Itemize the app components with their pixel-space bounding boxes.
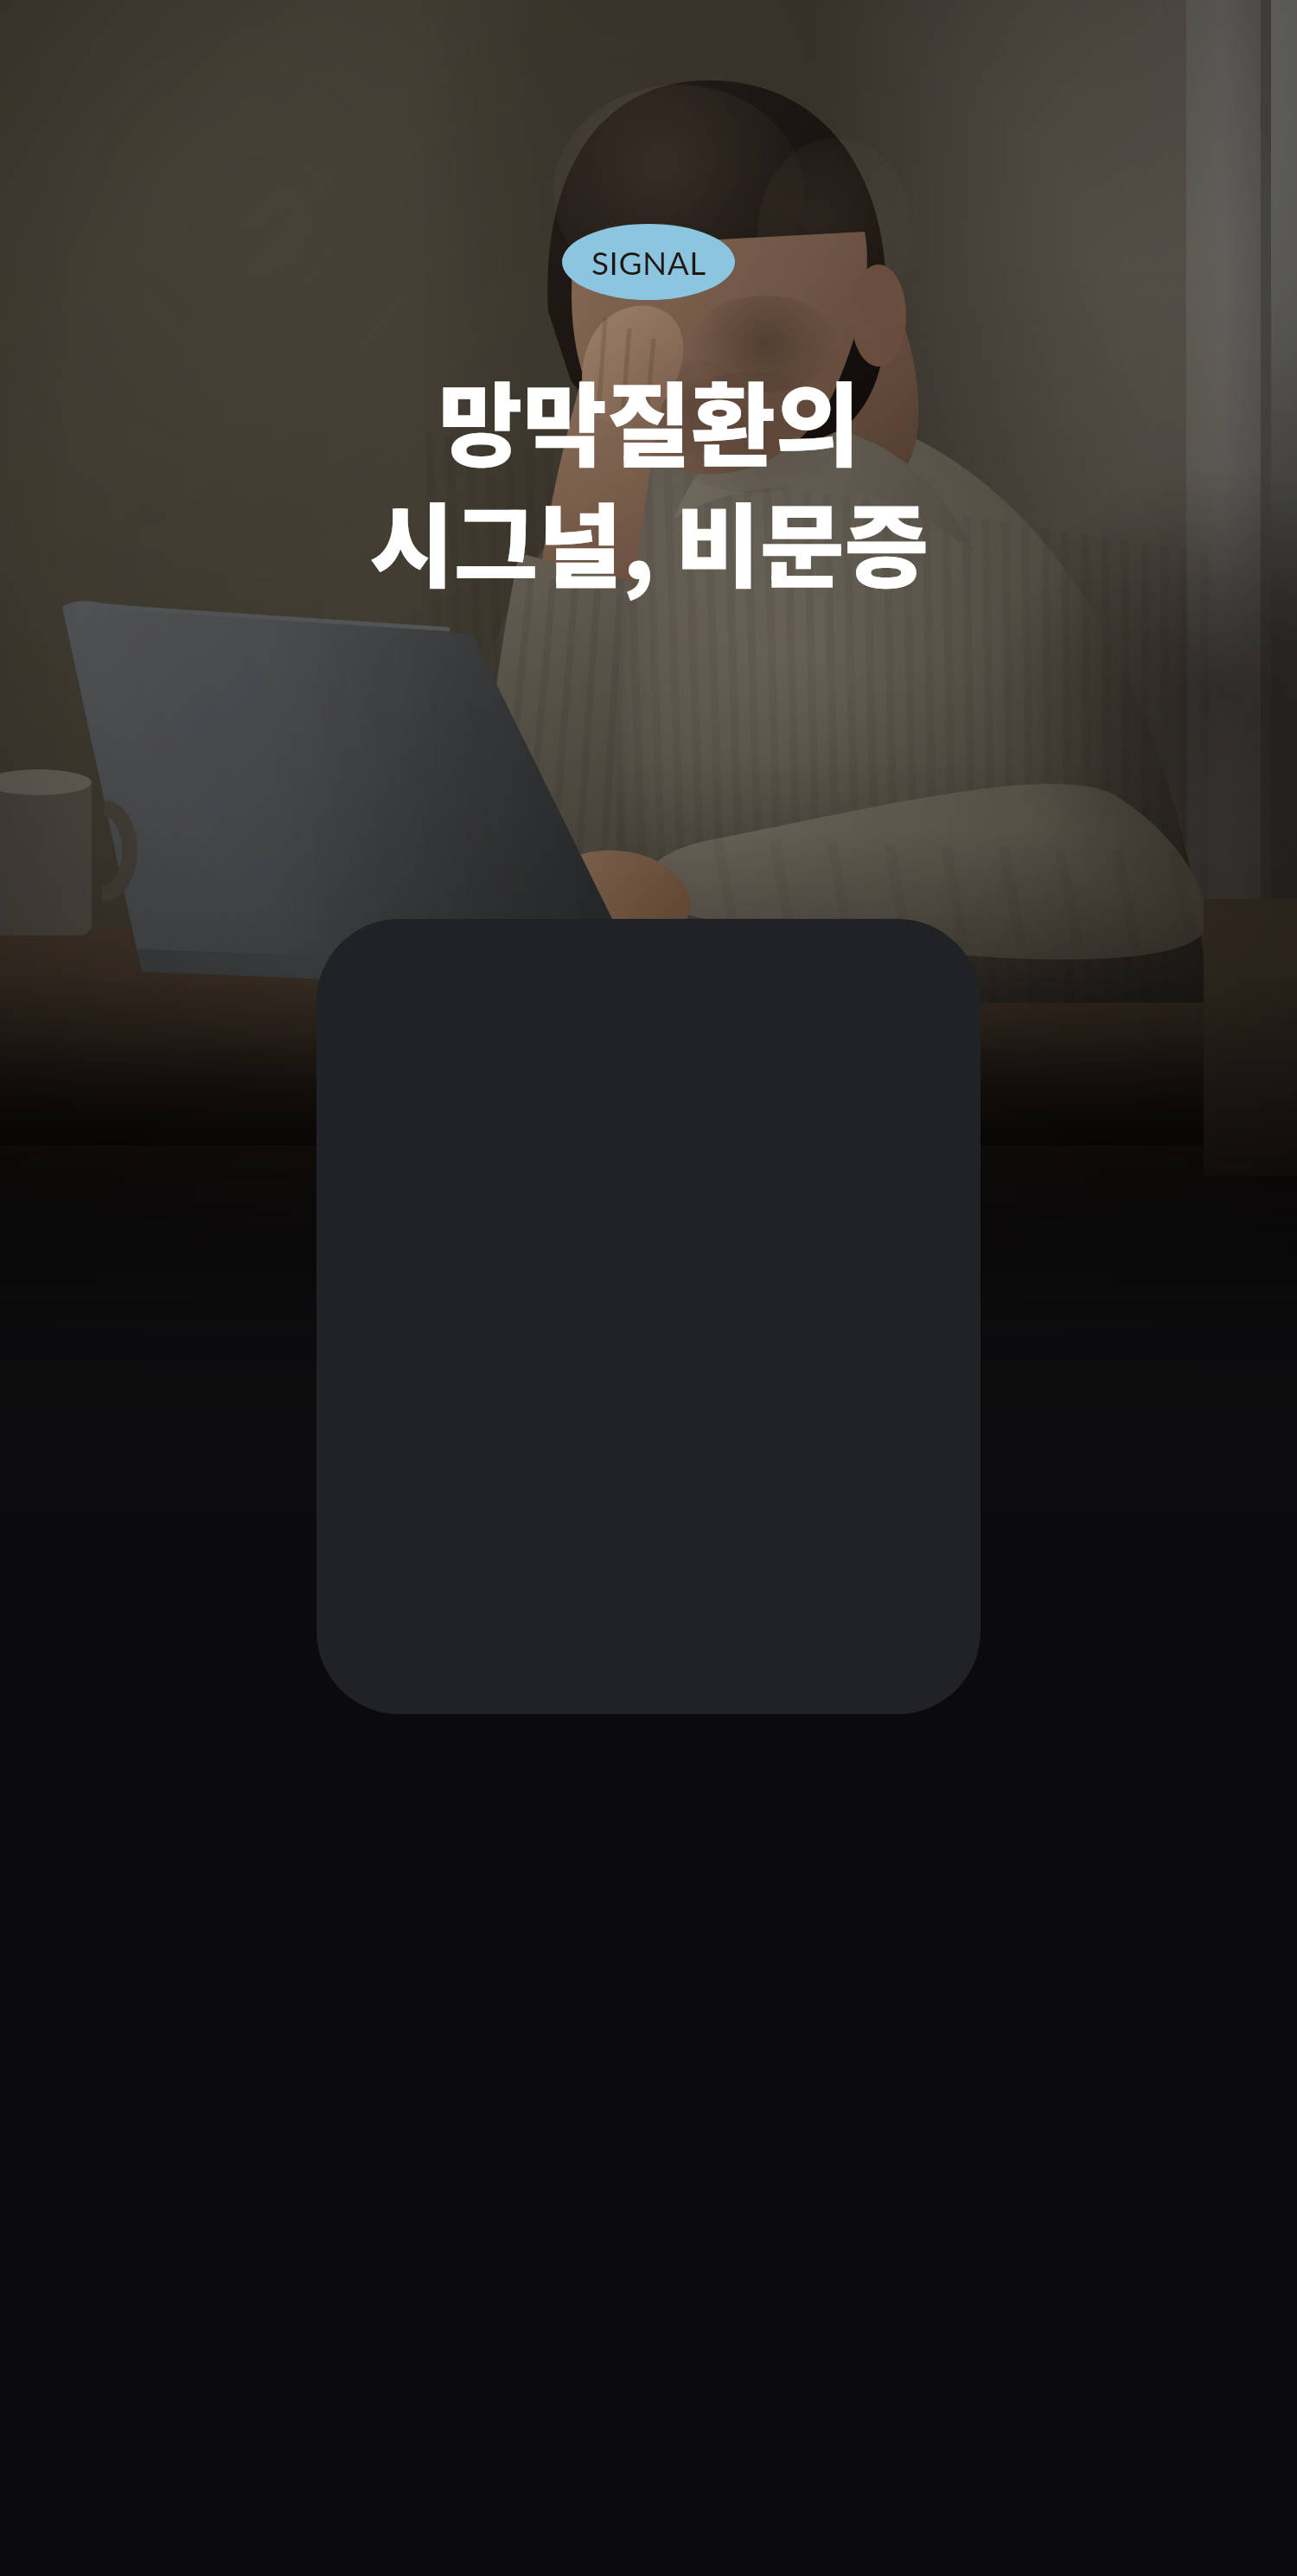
staticText: SIGNAL — [591, 243, 706, 281]
staticText: 망막질환의 시그널, 비문증 — [369, 353, 929, 607]
button[interactable]: SIGNAL — [562, 224, 735, 300]
